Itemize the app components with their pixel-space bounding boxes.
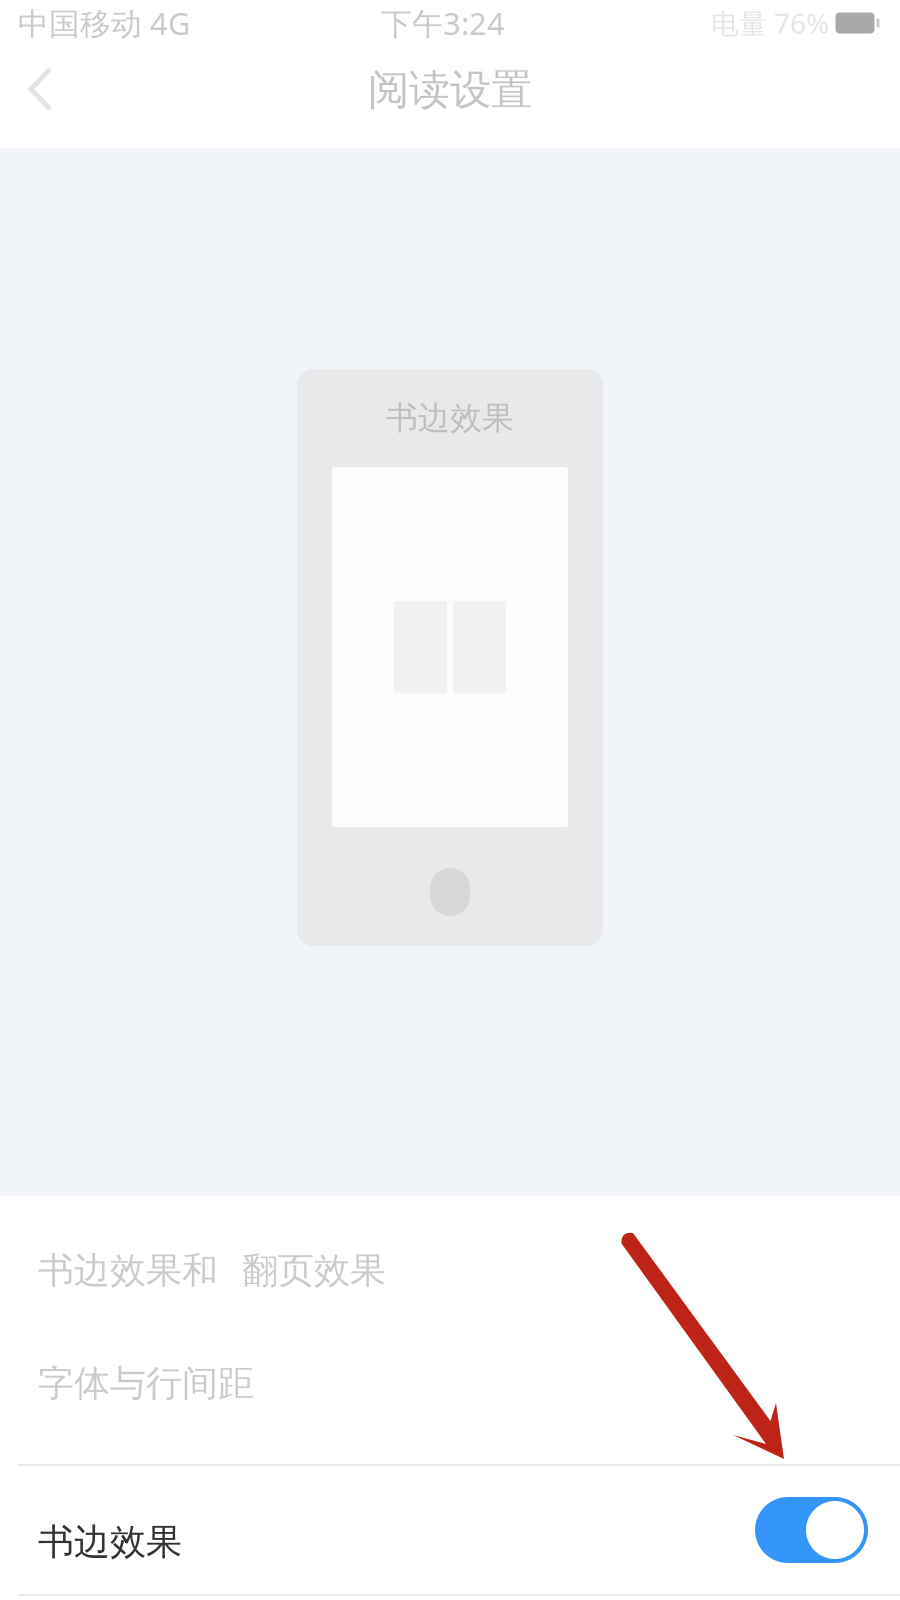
staticText: 书边效果 <box>38 1520 182 1564</box>
button[interactable]: 字体与行间距 <box>0 1327 900 1440</box>
staticText: 书边效果 <box>386 398 514 438</box>
staticText: 电量 76% <box>711 4 829 42</box>
staticText: 中国移动 4G <box>18 3 190 43</box>
staticText: 翻页效果 <box>242 1248 386 1293</box>
button[interactable]: 书边效果 <box>0 1466 900 1594</box>
staticText: 字体与行间距 <box>38 1361 254 1406</box>
staticText: 阅读设置 <box>368 65 532 115</box>
staticText: 下午3:24 <box>381 3 505 43</box>
staticText: 书边效果和 <box>38 1248 218 1293</box>
button[interactable]: 书边效果和 <box>0 1214 900 1327</box>
button[interactable]: Back <box>8 57 72 121</box>
